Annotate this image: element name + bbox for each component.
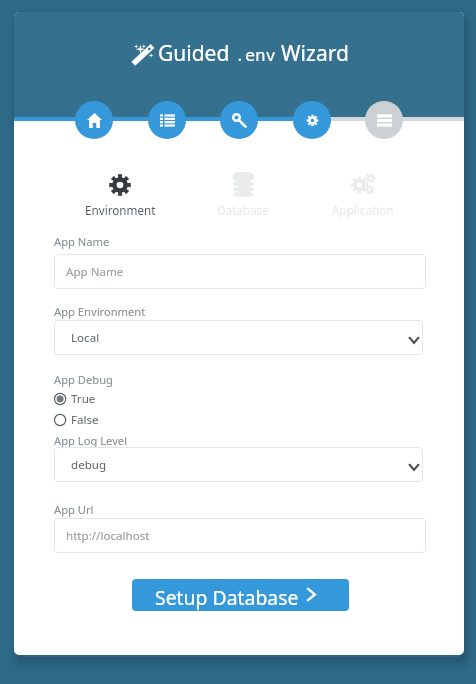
staticText: App Log Level bbox=[54, 433, 128, 448]
staticText: debug bbox=[71, 457, 107, 473]
button[interactable]: False bbox=[54, 411, 100, 429]
button[interactable]: Database step bbox=[365, 101, 403, 139]
button[interactable]: http://localhost bbox=[54, 518, 426, 553]
staticText: App Name bbox=[54, 234, 110, 249]
staticText: Guided .env Wizard bbox=[158, 39, 349, 68]
button[interactable]: Home step bbox=[75, 101, 113, 139]
button[interactable]: App Name bbox=[54, 254, 426, 289]
staticText: Application bbox=[332, 202, 394, 218]
staticText: False bbox=[71, 412, 99, 428]
staticText: App Debug bbox=[54, 372, 113, 387]
button[interactable]: Local bbox=[54, 320, 423, 355]
button[interactable]: debug bbox=[54, 447, 423, 482]
staticText: Local bbox=[71, 330, 100, 346]
staticText: App Environment bbox=[54, 304, 146, 319]
button[interactable]: Setup Database bbox=[132, 579, 349, 611]
button[interactable]: True bbox=[54, 390, 97, 408]
button[interactable]: Requirements step bbox=[148, 101, 186, 139]
staticText: http://localhost bbox=[66, 528, 150, 544]
button[interactable]: Environment bbox=[60, 157, 180, 217]
staticText: Environment bbox=[85, 202, 156, 218]
staticText: True bbox=[71, 391, 96, 407]
button[interactable]: Application bbox=[303, 157, 423, 217]
staticText: Database bbox=[217, 202, 269, 218]
button[interactable]: Database bbox=[183, 157, 303, 217]
staticText: Setup Database bbox=[155, 584, 299, 610]
staticText: App Name bbox=[66, 264, 124, 280]
staticText: App Url bbox=[54, 502, 94, 517]
button[interactable]: Environment step bbox=[293, 101, 331, 139]
button[interactable]: Permissions step bbox=[220, 101, 258, 139]
